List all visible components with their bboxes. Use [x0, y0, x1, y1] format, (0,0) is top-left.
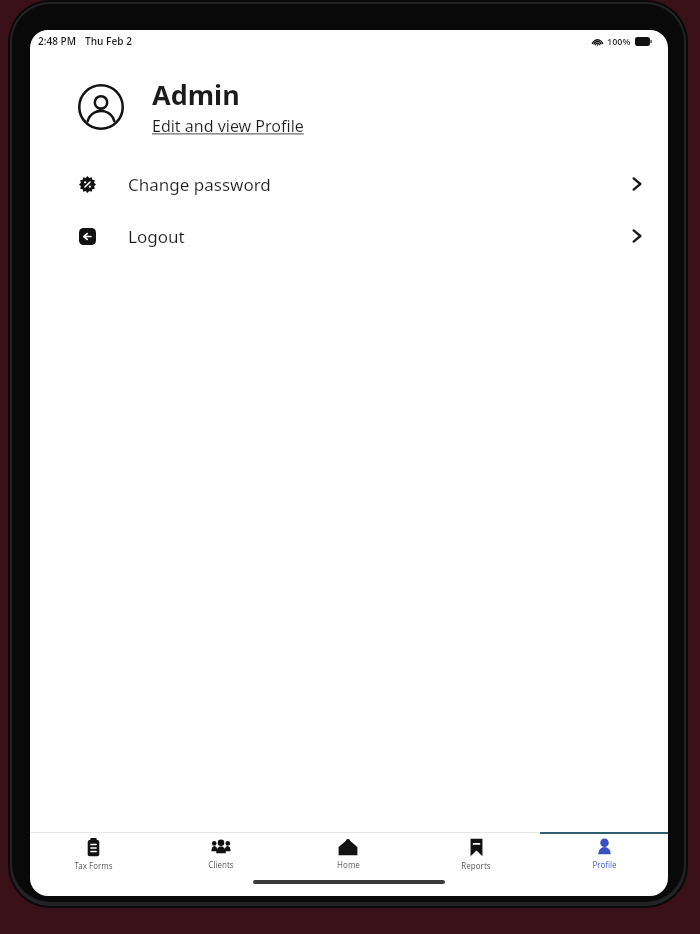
other: Profile: [596, 838, 613, 856]
staticText: 100%: [607, 35, 631, 47]
staticText: Change password: [128, 173, 271, 196]
staticText: Profile: [592, 859, 617, 870]
other: Home: [338, 838, 358, 856]
other: Profile avatar: [78, 84, 124, 130]
staticText: Edit and view Profile: [152, 115, 304, 137]
button[interactable]: Reports: [412, 834, 540, 878]
button[interactable]: Home: [284, 834, 412, 878]
other: Reports: [468, 838, 485, 857]
staticText: Logout: [128, 225, 185, 248]
other: Clients: [211, 838, 231, 856]
button[interactable]: Profile avatar: [78, 76, 644, 137]
button[interactable]: Tax Forms: [30, 834, 157, 878]
staticText: Reports: [461, 860, 491, 871]
button[interactable]: Clients: [157, 834, 284, 878]
staticText: Admin: [152, 76, 240, 113]
staticText: Clients: [208, 859, 234, 870]
staticText: Home: [337, 859, 360, 870]
other: Tax Forms: [85, 838, 102, 857]
button[interactable]: Change password: [30, 167, 668, 201]
staticText: Thu Feb 2: [85, 34, 132, 48]
button[interactable]: Profile: [540, 834, 668, 878]
other: Open: [630, 226, 644, 246]
button[interactable]: Logout: [30, 219, 668, 253]
staticText: 2:48 PM: [38, 34, 76, 48]
staticText: Tax Forms: [74, 860, 113, 871]
other: Open: [630, 174, 644, 194]
